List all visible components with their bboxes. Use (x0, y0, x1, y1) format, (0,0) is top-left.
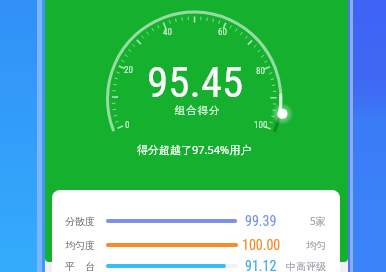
button[interactable]: 分散度 (52, 210, 340, 232)
staticText: 40 (163, 27, 172, 38)
staticText: 得分超越了97.54%用户 (137, 142, 252, 157)
staticText: 均匀度 (65, 239, 95, 252)
button[interactable]: 均匀度 (52, 234, 340, 256)
button[interactable]: 平 台 (52, 255, 340, 272)
staticText: 99.39 (245, 213, 277, 229)
staticText: 中高评级 (286, 260, 326, 272)
staticText: 91.12 (245, 258, 277, 272)
button[interactable] (45, 0, 348, 262)
staticText: 80 (256, 66, 265, 77)
staticText: 100 (254, 120, 268, 131)
staticText: 100.00 (242, 237, 281, 253)
staticText: 分散度 (65, 215, 95, 228)
staticText: 20 (124, 65, 133, 76)
staticText: 组合得分 (174, 104, 220, 117)
staticText: 95.45 (147, 57, 244, 107)
staticText: 平 台 (65, 259, 95, 272)
staticText: 均匀 (306, 239, 326, 252)
staticText: 0 (125, 120, 130, 131)
staticText: 5家 (310, 214, 326, 228)
staticText: 60 (218, 27, 227, 38)
